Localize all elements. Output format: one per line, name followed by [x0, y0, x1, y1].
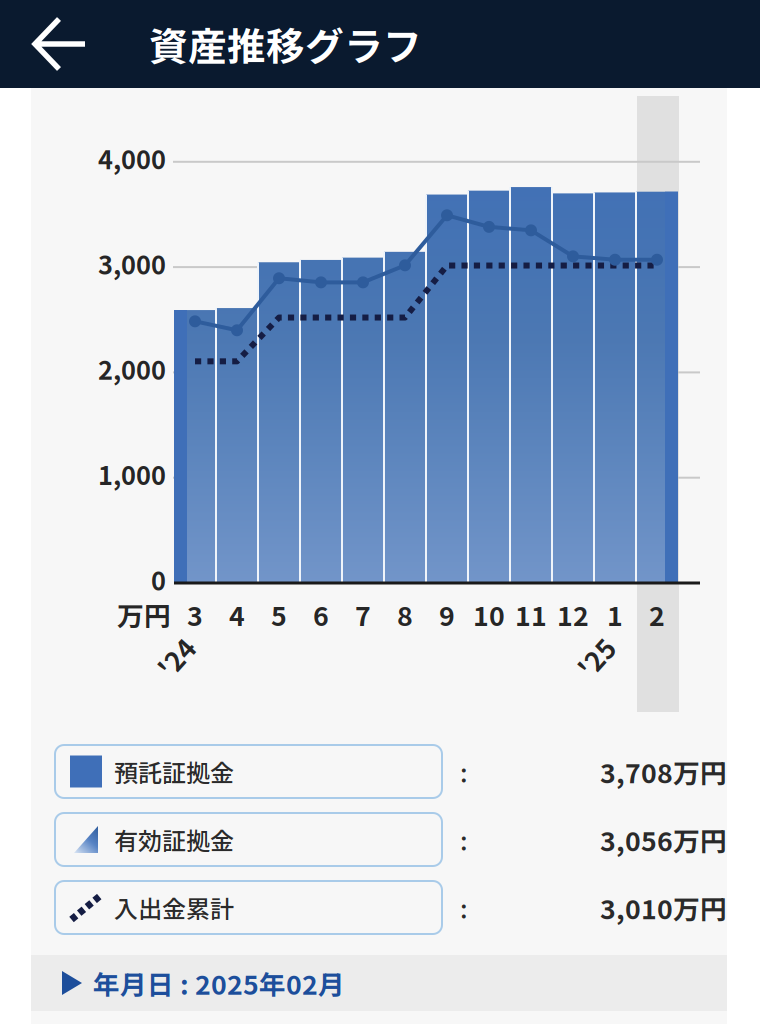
staticText: 3: [187, 595, 203, 634]
button[interactable]: 年月日 : 2025年02月: [31, 955, 727, 1011]
staticText: 11: [515, 595, 547, 634]
staticText: 0: [151, 561, 166, 598]
button[interactable]: 入出金累計: [55, 881, 727, 934]
staticText: :: [460, 889, 468, 926]
staticText: 2,000: [98, 350, 166, 387]
staticText: 4: [229, 595, 245, 634]
staticText: 9: [439, 595, 455, 634]
staticText: 入出金累計: [114, 890, 234, 925]
button[interactable]: 有効証拠金: [55, 813, 727, 866]
staticText: :: [460, 821, 468, 858]
staticText: 預託証拠金: [114, 754, 234, 789]
staticText: 1: [607, 595, 623, 634]
staticText: 資産推移グラフ: [149, 16, 422, 72]
staticText: 3,708万円: [600, 752, 727, 791]
staticText: 1,000: [98, 456, 166, 492]
staticText: '25: [575, 638, 616, 676]
staticText: 6: [313, 595, 329, 634]
staticText: 3,010万円: [600, 888, 727, 927]
staticText: 12: [557, 595, 589, 634]
staticText: 3,000: [98, 245, 166, 282]
staticText: 2: [649, 595, 665, 634]
staticText: 年月日 : 2025年02月: [93, 964, 345, 1002]
staticText: :: [460, 753, 468, 790]
staticText: 4,000: [98, 140, 166, 176]
button[interactable]: 戻る: [0, 3, 106, 85]
staticText: 5: [271, 595, 287, 634]
staticText: 10: [473, 595, 505, 634]
staticText: 8: [397, 595, 413, 634]
staticText: 有効証拠金: [114, 822, 234, 857]
staticText: 7: [355, 595, 371, 634]
button[interactable]: 預託証拠金: [55, 745, 727, 798]
staticText: 3,056万円: [600, 820, 727, 859]
staticText: '24: [155, 638, 196, 676]
staticText: 万円: [117, 595, 171, 634]
